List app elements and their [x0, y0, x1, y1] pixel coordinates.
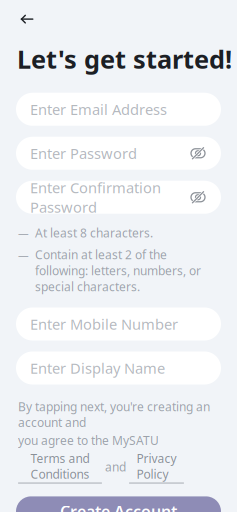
- staticText: Let's get started!: [17, 42, 232, 76]
- button[interactable]: Back: [14, 6, 40, 32]
- button[interactable]: Enter Email Address: [16, 93, 221, 126]
- staticText: Contain at least 2 of the following: let…: [35, 247, 201, 294]
- button[interactable]: Enter Display Name: [16, 351, 221, 384]
- staticText: Enter Email Address: [30, 99, 167, 119]
- button[interactable]: Enter Mobile Number: [16, 307, 221, 340]
- staticText: Enter Confirmation Password: [30, 178, 161, 217]
- staticText: Enter Mobile Number: [30, 314, 178, 334]
- staticText: At least 8 characters.: [35, 225, 153, 241]
- button[interactable]: Privacy Policy: [129, 450, 184, 483]
- button[interactable]: Create Account: [16, 496, 221, 512]
- button[interactable]: Terms and Conditions: [18, 450, 102, 483]
- button[interactable]: Enter Password: [16, 137, 221, 170]
- staticText: By tapping next, you're creating an acco…: [18, 398, 210, 430]
- staticText: Privacy Policy: [136, 450, 176, 482]
- staticText: and: [105, 459, 126, 475]
- staticText: —: [18, 226, 29, 240]
- button[interactable]: Enter Confirmation Password: [16, 181, 221, 214]
- staticText: Enter Password: [30, 143, 137, 163]
- staticText: Enter Display Name: [30, 358, 165, 378]
- staticText: —: [18, 248, 29, 262]
- staticText: Terms and Conditions: [30, 450, 89, 482]
- staticText: you agree to the MySATU: [18, 432, 159, 448]
- staticText: Create Account: [60, 501, 177, 512]
